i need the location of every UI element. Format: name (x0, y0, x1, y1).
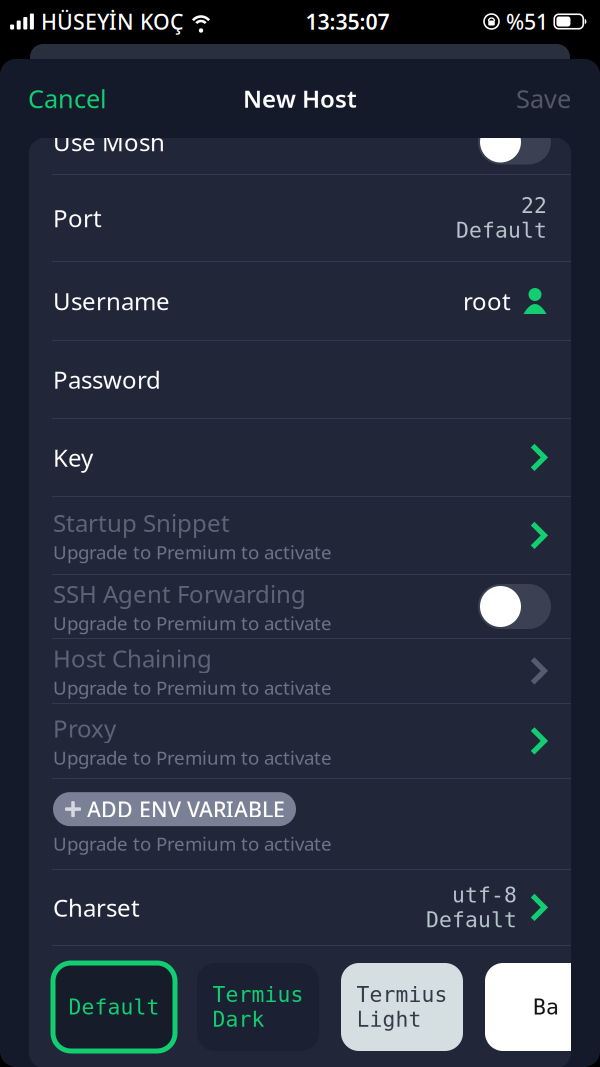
staticText: utf-8 (452, 883, 517, 907)
button[interactable]: Host Chaining (29, 639, 571, 703)
button[interactable]: Ba (485, 963, 600, 1051)
button[interactable]: Default (53, 963, 175, 1051)
staticText: Ba (533, 995, 559, 1019)
staticText: Host Chaining (53, 642, 212, 674)
staticText: SSH Agent Forwarding (53, 578, 306, 610)
button[interactable]: Charset (29, 870, 571, 945)
staticText: Use Mosh (53, 126, 165, 158)
button[interactable]: Save (481, 72, 600, 124)
button[interactable]: SSH Agent Forwarding (29, 575, 571, 638)
staticText: Termius Dark (212, 982, 303, 1032)
staticText: Proxy (53, 712, 116, 744)
staticText: Username (53, 285, 170, 317)
staticText: Default (68, 995, 159, 1019)
staticText: Port (53, 202, 102, 234)
staticText: Upgrade to Premium to activate (53, 675, 332, 700)
staticText: Startup Snippet (53, 507, 230, 539)
staticText: Upgrade to Premium to activate (53, 610, 332, 635)
staticText: ADD ENV VARIABLE (87, 795, 285, 823)
button[interactable]: Termius Light (341, 963, 463, 1051)
button[interactable]: Proxy (29, 704, 571, 778)
staticText: Charset (53, 892, 140, 923)
staticText: HÜSEYİN KOÇ (41, 7, 184, 36)
staticText: Cancel (28, 82, 107, 115)
button[interactable]: Cancel (0, 72, 118, 124)
staticText: 22 (521, 193, 547, 218)
staticText: Default (426, 907, 517, 932)
button[interactable]: ADD ENV VARIABLE (53, 792, 296, 826)
staticText: root (463, 285, 511, 317)
staticText: Key (53, 442, 93, 473)
staticText: Password (53, 364, 161, 395)
staticText: Upgrade to Premium to activate (53, 745, 332, 770)
staticText: Save (516, 82, 571, 115)
staticText: Default (456, 218, 547, 243)
staticText: Termius Light (356, 982, 447, 1032)
staticText: %51 (506, 7, 548, 36)
button[interactable]: Key (29, 419, 571, 496)
button[interactable]: Startup Snippet (29, 497, 571, 574)
staticText: New Host (243, 83, 357, 114)
staticText: 13:35:07 (305, 7, 389, 36)
button[interactable]: Termius Dark (197, 963, 319, 1051)
staticText: Upgrade to Premium to activate (53, 539, 332, 564)
staticText: Upgrade to Premium to activate (53, 831, 332, 856)
